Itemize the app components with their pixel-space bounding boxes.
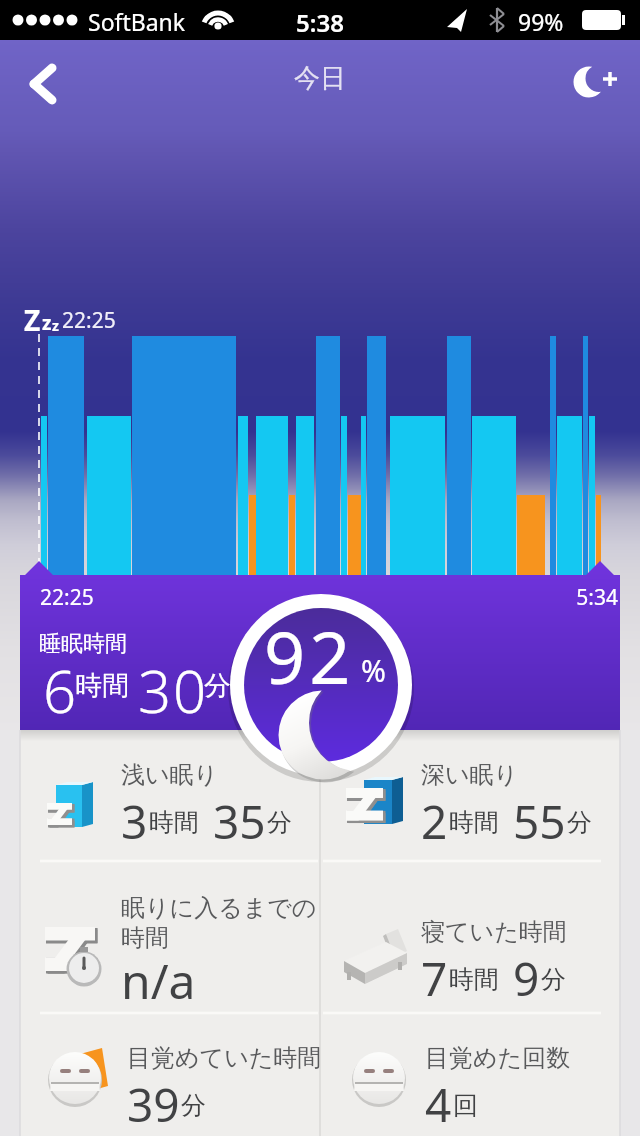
staticText: 分 bbox=[204, 669, 231, 703]
staticText: 35 bbox=[213, 790, 266, 853]
staticText: 分 bbox=[267, 807, 292, 838]
staticText: 深い眠り bbox=[421, 760, 519, 790]
staticText: 寝ていた時間 bbox=[421, 917, 567, 947]
staticText: 目覚めた回数 bbox=[425, 1043, 571, 1073]
staticText: 5:38 bbox=[0, 6, 640, 39]
staticText: 分 bbox=[541, 964, 566, 995]
staticText: 39 bbox=[127, 1073, 180, 1136]
staticText: 睡眠時間 bbox=[39, 630, 127, 658]
staticText: 5:34 bbox=[0, 583, 618, 612]
staticText: 今日 bbox=[0, 62, 640, 95]
staticText: 分 bbox=[181, 1090, 206, 1121]
staticText: 分 bbox=[567, 807, 592, 838]
button[interactable] bbox=[20, 730, 320, 861]
staticText: 時間 bbox=[449, 807, 499, 838]
staticText: 時間 bbox=[449, 964, 499, 995]
staticText: 目覚めていた時間 bbox=[127, 1043, 322, 1073]
staticText: 7 bbox=[421, 947, 448, 1010]
staticText: 時間 bbox=[149, 807, 199, 838]
staticText: 55 bbox=[513, 790, 566, 853]
button[interactable] bbox=[564, 50, 634, 112]
button[interactable] bbox=[320, 1013, 620, 1136]
staticText: 92 bbox=[264, 607, 355, 705]
button[interactable] bbox=[20, 861, 320, 1013]
staticText: z bbox=[42, 310, 52, 336]
staticText: 22:25 bbox=[62, 306, 116, 335]
staticText: 9 bbox=[513, 947, 540, 1010]
staticText: 22:25 bbox=[40, 583, 94, 612]
staticText: 浅い眠り bbox=[121, 760, 219, 790]
staticText: z bbox=[52, 316, 59, 335]
staticText: 30 bbox=[138, 651, 209, 730]
staticText: n/a bbox=[121, 948, 196, 1013]
staticText: SoftBank bbox=[88, 6, 186, 37]
button[interactable] bbox=[320, 730, 620, 861]
staticText: Z bbox=[24, 301, 41, 339]
button[interactable] bbox=[20, 1013, 320, 1136]
staticText: % bbox=[361, 650, 386, 691]
button[interactable] bbox=[226, 590, 416, 780]
staticText: 2 bbox=[421, 790, 448, 853]
staticText: 時間 bbox=[121, 923, 169, 953]
staticText: 6 bbox=[43, 651, 77, 730]
staticText: 眠りに入るまでの bbox=[121, 893, 317, 923]
staticText: 4 bbox=[425, 1073, 452, 1136]
staticText: 時間 bbox=[75, 669, 129, 703]
button[interactable] bbox=[320, 861, 620, 1013]
staticText: 回 bbox=[453, 1090, 478, 1121]
staticText: 99% bbox=[518, 6, 564, 37]
staticText: 3 bbox=[121, 790, 148, 853]
button[interactable] bbox=[20, 56, 76, 112]
